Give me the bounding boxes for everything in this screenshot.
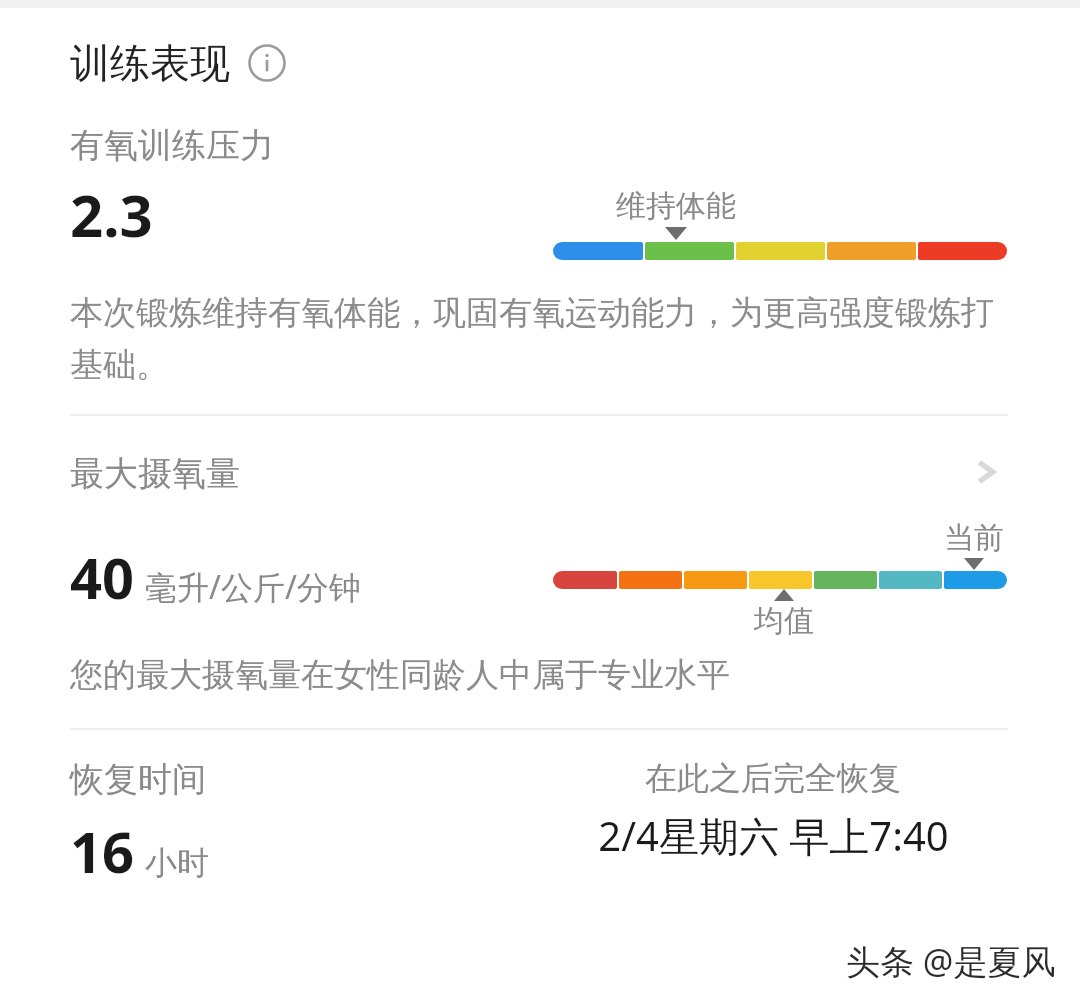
staticText: 2/4星期六 早上7:40 [598,808,949,863]
staticText: 最大摄氧量 [70,452,964,495]
staticText: 有氧训练压力 [70,124,274,167]
staticText: 当前 [944,519,1004,557]
staticText: 头条 @是夏风 [846,938,1056,984]
staticText: 均值 [754,602,814,640]
staticText: 您的最大摄氧量在女性同龄人中属于专业水平 [70,654,730,696]
button[interactable]: Info [248,44,286,82]
staticText: 40 [70,539,135,615]
staticText: 2.3 [70,175,153,254]
other: More [964,450,1008,494]
staticText: 本次锻炼维持有氧体能，巩固有氧运动能力，为更高强度锻炼打基础。 [70,292,1008,386]
button[interactable]: 最大摄氧量 [70,416,1008,503]
button[interactable]: 训练表现 [70,38,286,88]
staticText: 维持体能 [616,187,736,225]
staticText: 16 [70,813,135,889]
staticText: 毫升/公斤/分钟 [145,565,361,609]
staticText: 训练表现 [70,38,230,88]
staticText: 小时 [145,843,209,883]
staticText: 恢复时间 [70,758,206,801]
staticText: 在此之后完全恢复 [645,758,901,798]
